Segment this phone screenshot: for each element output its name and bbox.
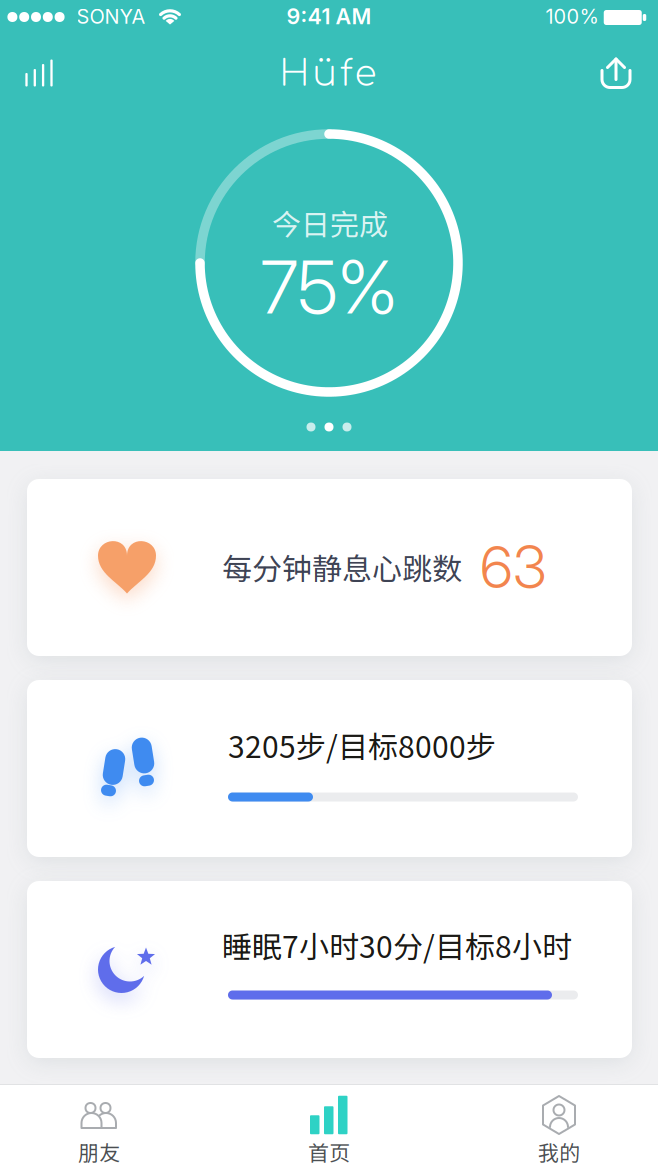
staticText: 睡眠7小时30分/目标8小时 (222, 923, 572, 967)
button[interactable]: 每分钟静息心跳数 (27, 479, 632, 656)
button[interactable]: 朋友 (29, 1084, 169, 1170)
staticText: 每分钟静息心跳数 (222, 545, 462, 589)
button[interactable]: 3205步/目标8000步 (27, 680, 632, 857)
staticText: SONYA (76, 4, 145, 29)
staticText: 9:41 AM (286, 3, 371, 29)
button[interactable]: 我的 (489, 1084, 629, 1170)
staticText: 63 (480, 532, 546, 602)
staticText: 今日完成 (272, 201, 388, 243)
button[interactable]: Share (600, 57, 631, 88)
staticText: 我的 (538, 1136, 580, 1167)
button[interactable]: Statistics (25, 59, 53, 86)
staticText: 75% (260, 243, 397, 331)
button[interactable]: 首页 (259, 1084, 399, 1170)
button[interactable]: 睡眠7小时30分/目标8小时 (27, 881, 632, 1058)
staticText: 首页 (308, 1136, 350, 1167)
staticText: 朋友 (78, 1136, 120, 1167)
staticText: 3205步/目标8000步 (228, 723, 496, 767)
staticText: 100% (545, 4, 598, 29)
staticText: Hüfe (279, 54, 376, 94)
